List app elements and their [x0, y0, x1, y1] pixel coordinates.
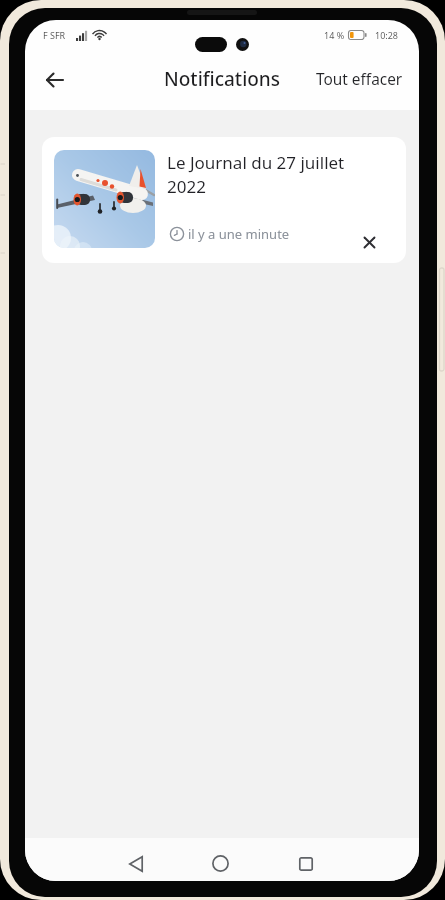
button[interactable]	[119, 847, 152, 880]
staticText: 10:28	[375, 29, 399, 41]
staticText: Le Journal du 27 juillet 2022	[167, 151, 345, 198]
staticText: Notifications	[164, 66, 281, 92]
staticText: 14 %	[324, 29, 345, 41]
button[interactable]	[204, 847, 237, 880]
button[interactable]	[39, 64, 71, 96]
button[interactable]	[353, 226, 386, 259]
button[interactable]: Tout effacer	[316, 56, 408, 102]
button[interactable]: Le Journal du 27 juillet 2022	[42, 137, 406, 263]
staticText: F SFR	[43, 29, 66, 41]
button[interactable]	[289, 847, 322, 880]
staticText: Tout effacer	[316, 69, 403, 90]
staticText: il y a une minute	[188, 225, 290, 243]
